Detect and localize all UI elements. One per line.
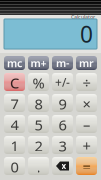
staticText: % xyxy=(32,73,44,91)
button[interactable]: + xyxy=(76,136,97,154)
button[interactable]: 5 xyxy=(28,115,49,133)
staticText: 5 xyxy=(34,115,42,133)
staticText: m- xyxy=(56,56,69,70)
button[interactable]: m- xyxy=(52,56,73,70)
button[interactable]: % xyxy=(28,73,49,91)
staticText: = xyxy=(82,157,90,175)
staticText: mr xyxy=(79,56,94,70)
staticText: 7 xyxy=(10,94,18,112)
button[interactable]: 3 xyxy=(52,136,73,154)
staticText: 6 xyxy=(58,115,66,133)
button[interactable]: mr xyxy=(76,56,97,70)
button[interactable]: +/- xyxy=(52,73,73,91)
button[interactable]: 2 xyxy=(28,136,49,154)
button[interactable]: m+ xyxy=(28,56,49,70)
button[interactable]: 0 xyxy=(4,157,25,175)
button[interactable]: 7 xyxy=(4,94,25,112)
button[interactable]: × xyxy=(76,94,97,112)
button[interactable]: 8 xyxy=(28,94,49,112)
staticText: 1 xyxy=(10,136,18,154)
staticText: C xyxy=(10,73,19,91)
staticText: +/- xyxy=(55,74,70,90)
button[interactable]: . xyxy=(28,157,49,175)
staticText: 0 xyxy=(10,157,18,175)
staticText: Calculator xyxy=(71,13,95,21)
button[interactable]: = xyxy=(76,157,97,175)
staticText: 9 xyxy=(58,94,66,112)
button[interactable]: C xyxy=(4,73,25,91)
staticText: 8 xyxy=(34,94,42,112)
staticText: m+ xyxy=(30,56,46,70)
staticText: x xyxy=(61,161,66,171)
button[interactable]: mc xyxy=(4,56,25,70)
button[interactable]: 1 xyxy=(4,136,25,154)
staticText: × xyxy=(82,94,90,112)
button[interactable]: Delete xyxy=(52,157,73,175)
staticText: . xyxy=(36,157,40,175)
staticText: 4 xyxy=(10,115,18,133)
button[interactable]: 4 xyxy=(4,115,25,133)
staticText: 2 xyxy=(34,136,42,154)
button[interactable]: 6 xyxy=(52,115,73,133)
staticText: – xyxy=(83,115,90,133)
staticText: + xyxy=(82,136,90,154)
staticText: 3 xyxy=(58,136,66,154)
button[interactable]: 9 xyxy=(52,94,73,112)
staticText: ÷ xyxy=(82,73,90,91)
button[interactable]: – xyxy=(76,115,97,133)
staticText: 0 xyxy=(80,19,93,49)
staticText: mc xyxy=(7,56,22,70)
button[interactable]: ÷ xyxy=(76,73,97,91)
